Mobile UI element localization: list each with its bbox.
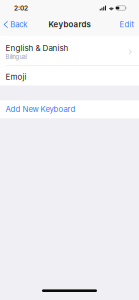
button[interactable]: Edit (116, 15, 138, 34)
staticText: Emoji (5, 72, 26, 82)
staticText: Add New Keyboard (5, 105, 75, 114)
staticText: Edit (119, 20, 134, 29)
button[interactable]: English & Danish (0, 36, 139, 65)
staticText: 2:02 (14, 4, 28, 12)
staticText: Keyboards (48, 20, 90, 29)
staticText: English & Danish (5, 43, 68, 53)
button[interactable]: Back (0, 15, 31, 34)
button[interactable]: Emoji (0, 66, 139, 85)
button[interactable]: Add New Keyboard (0, 100, 139, 118)
staticText: Back (10, 20, 27, 29)
staticText: Bilingual (5, 53, 26, 60)
